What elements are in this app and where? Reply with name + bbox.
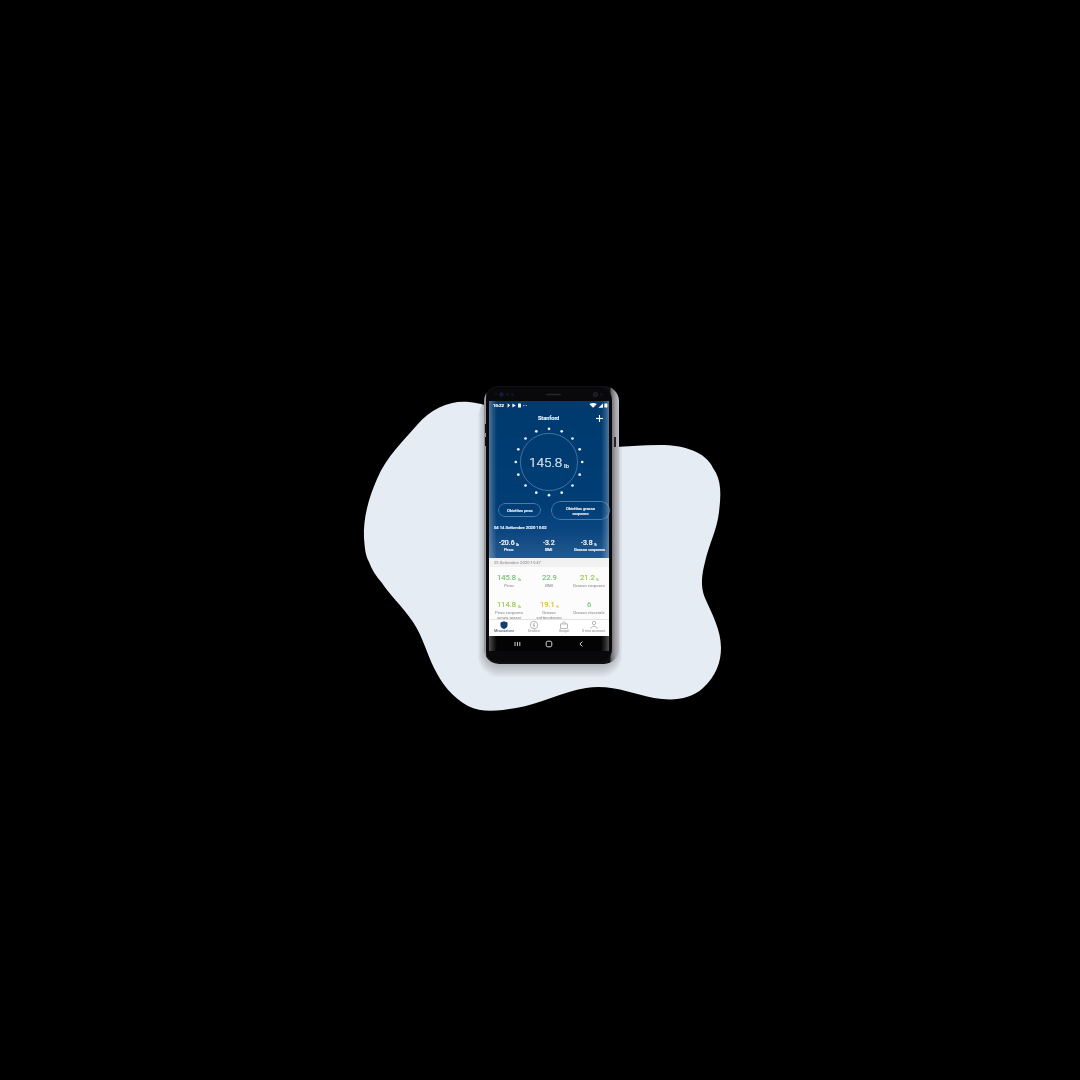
button[interactable]: Current weight 145.8 lb xyxy=(513,426,585,498)
button[interactable]: Add measurement xyxy=(593,412,606,425)
staticText: -3.8 xyxy=(581,539,593,547)
staticText: % xyxy=(556,604,559,608)
staticText: 145.8 xyxy=(497,573,517,582)
button[interactable]: Obiettivo peso xyxy=(498,503,541,517)
staticText: % xyxy=(594,542,597,546)
button[interactable]: Home xyxy=(545,640,553,648)
staticText: 145.8 xyxy=(529,454,563,470)
staticText: 22.9 xyxy=(542,573,557,582)
staticText: 21.2 xyxy=(580,573,595,582)
button[interactable]: -20.6 xyxy=(489,539,529,552)
button[interactable]: Recents xyxy=(513,640,521,648)
staticText: Misurazione xyxy=(494,629,515,633)
button[interactable]: 145.8 xyxy=(489,573,529,588)
button[interactable]: -3.8 xyxy=(569,539,609,552)
staticText: Grasso sottocutaneo xyxy=(536,610,562,620)
button[interactable]: 114.8 xyxy=(489,600,529,620)
staticText: BMI xyxy=(545,547,553,552)
staticText: Obiettivo grasso corporeo xyxy=(566,506,595,516)
staticText: lb xyxy=(516,542,520,546)
staticText: Stanford xyxy=(538,415,560,422)
staticText: lb xyxy=(564,462,569,469)
staticText: Peso xyxy=(504,547,514,552)
staticText: Obiettivo peso xyxy=(507,508,533,513)
staticText: Grasso corporeo xyxy=(573,583,605,588)
staticText: Peso corporeo senza grassi xyxy=(495,610,523,620)
staticText: -20.6 xyxy=(499,539,515,547)
staticText: Grafico xyxy=(528,629,540,633)
staticText: 04 14 Settembre 2020 10:02 xyxy=(494,525,547,530)
button[interactable]: Grafico xyxy=(519,620,549,637)
staticText: BMI xyxy=(545,583,553,588)
button[interactable]: Scopri xyxy=(549,620,579,637)
button[interactable]: Il mio account xyxy=(579,620,609,637)
staticText: Grasso corporeo xyxy=(574,547,605,552)
staticText: Grasso viscerale xyxy=(573,610,605,615)
button[interactable]: Back xyxy=(577,640,585,648)
staticText: lb xyxy=(518,604,522,608)
staticText: 114.8 xyxy=(497,600,517,609)
staticText: 19.1 xyxy=(540,600,555,609)
button[interactable]: 22.9 xyxy=(529,573,569,588)
staticText: lb xyxy=(518,577,522,581)
staticText: Il mio account xyxy=(582,629,606,633)
button[interactable]: Misurazione xyxy=(489,620,519,637)
staticText: Scopri xyxy=(559,629,570,633)
button[interactable]: 21.2 xyxy=(569,573,609,588)
button[interactable]: 6 xyxy=(569,600,609,615)
button[interactable]: Obiettivo grasso corporeo xyxy=(551,501,610,520)
button[interactable]: 19.1 xyxy=(529,600,569,620)
staticText: 10:22 xyxy=(493,403,504,408)
button[interactable]: -3.2 xyxy=(529,539,569,552)
staticText: -3.2 xyxy=(543,539,555,547)
staticText: 6 xyxy=(587,600,592,609)
staticText: Peso xyxy=(504,583,514,588)
staticText: 25 Settembre 2020 15:47 xyxy=(494,560,541,565)
staticText: % xyxy=(596,577,599,581)
